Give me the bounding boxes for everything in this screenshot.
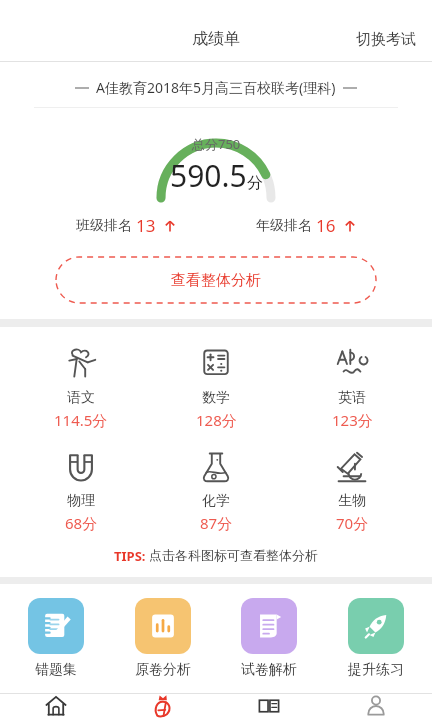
staticText: 13 <box>136 214 156 237</box>
staticText: 分 <box>247 173 263 193</box>
button[interactable]: 数学 <box>161 341 271 432</box>
button[interactable]: 物理 <box>26 444 136 535</box>
staticText: 70分 <box>336 513 369 533</box>
staticText: 提升练习 <box>348 661 404 679</box>
staticText: 总分750 <box>192 135 241 153</box>
staticText: 化学 <box>202 492 230 510</box>
staticText: 590.5 <box>170 155 247 196</box>
button[interactable]: 错题集 <box>6 598 106 679</box>
button[interactable]: 化学 <box>161 444 271 535</box>
button[interactable]: 试卷解析 <box>219 598 319 679</box>
button[interactable]: 佳分宝 <box>113 694 213 720</box>
staticText: 错题集 <box>35 661 77 679</box>
staticText: 年级排名 <box>256 217 312 235</box>
staticText: A佳教育2018年5月高三百校联考(理科) <box>96 78 336 97</box>
button[interactable]: 班级排名 <box>72 210 180 241</box>
button[interactable]: 英语 <box>297 341 407 432</box>
staticText: 点击各科图标可查看整体分析 <box>149 547 318 563</box>
button[interactable]: 生物 <box>297 444 407 535</box>
button[interactable]: 年级排名 <box>252 210 360 241</box>
staticText: 查看整体分析 <box>171 271 261 290</box>
staticText: 原卷分析 <box>135 661 191 679</box>
button[interactable]: 提升练习 <box>326 598 426 679</box>
button[interactable]: 首页 <box>6 694 106 720</box>
button[interactable]: 个人 <box>326 694 426 720</box>
staticText: 物理 <box>67 492 95 510</box>
button[interactable]: A佳课堂 <box>219 694 319 720</box>
button[interactable]: 语文 <box>26 341 136 432</box>
staticText: 班级排名 <box>76 217 132 235</box>
staticText: 成绩单 <box>192 29 240 49</box>
staticText: 16 <box>316 214 336 237</box>
staticText: 数学 <box>202 389 230 407</box>
staticText: 语文 <box>67 389 95 407</box>
staticText: TIPS: <box>114 547 149 565</box>
staticText: 试卷解析 <box>241 661 297 679</box>
button[interactable]: 切换考试 <box>350 24 422 55</box>
staticText: 114.5分 <box>54 410 108 430</box>
staticText: 切换考试 <box>356 30 416 49</box>
button[interactable]: 原卷分析 <box>113 598 213 679</box>
staticText: 英语 <box>338 389 366 407</box>
staticText: 87分 <box>200 513 233 533</box>
button[interactable]: 查看整体分析 <box>56 257 376 303</box>
staticText: 68分 <box>65 513 98 533</box>
staticText: 128分 <box>196 410 237 430</box>
staticText: 123分 <box>332 410 373 430</box>
staticText: 生物 <box>338 492 366 510</box>
